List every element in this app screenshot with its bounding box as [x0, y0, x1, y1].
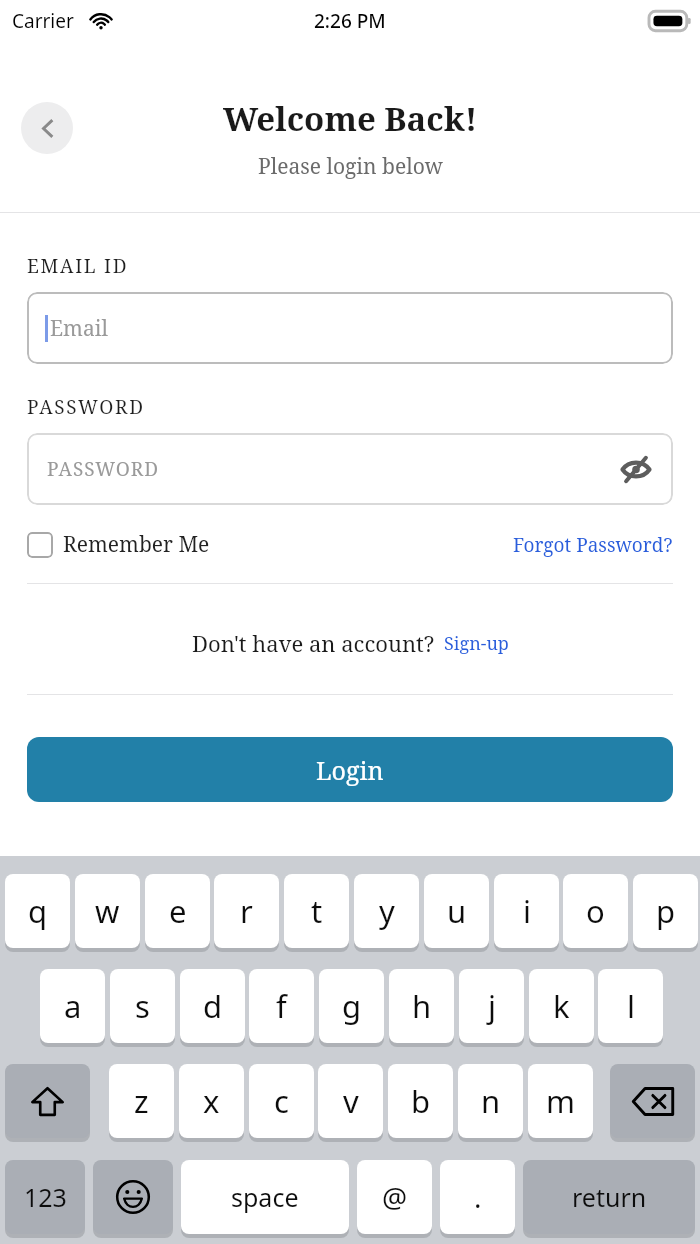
button[interactable]: Back: [21, 102, 73, 154]
staticText: space: [231, 1180, 299, 1214]
staticText: x: [203, 1080, 220, 1122]
button[interactable]: Backspace: [610, 1064, 695, 1138]
button[interactable]: Shift: [5, 1064, 90, 1138]
staticText: e: [169, 890, 187, 932]
staticText: u: [447, 890, 467, 932]
button[interactable]: m: [528, 1064, 593, 1138]
staticText: n: [481, 1080, 501, 1122]
staticText: PASSWORD: [47, 456, 160, 482]
button[interactable]: j: [459, 969, 524, 1043]
staticText: f: [276, 985, 287, 1027]
button[interactable]: .: [440, 1160, 515, 1234]
button[interactable]: d: [180, 969, 245, 1043]
button[interactable]: a: [40, 969, 105, 1043]
staticText: p: [656, 890, 676, 932]
staticText: PASSWORD: [27, 394, 145, 420]
staticText: k: [553, 985, 570, 1027]
staticText: g: [342, 985, 362, 1027]
button[interactable]: PASSWORD: [27, 433, 673, 505]
button[interactable]: f: [249, 969, 314, 1043]
staticText: d: [203, 985, 223, 1027]
staticText: c: [274, 1080, 289, 1122]
staticText: b: [411, 1080, 431, 1122]
staticText: t: [311, 890, 323, 932]
staticText: Don't have an account?: [192, 628, 435, 658]
button[interactable]: Forgot Password?: [513, 528, 673, 562]
staticText: l: [627, 985, 635, 1027]
button[interactable]: x: [179, 1064, 244, 1138]
staticText: a: [64, 985, 82, 1027]
staticText: return: [572, 1180, 647, 1214]
button[interactable]: v: [318, 1064, 383, 1138]
staticText: h: [412, 985, 432, 1027]
button[interactable]: Numbers: [5, 1160, 85, 1234]
button[interactable]: Login: [27, 737, 673, 802]
button[interactable]: Show password: [616, 449, 656, 489]
staticText: i: [523, 890, 531, 932]
button[interactable]: e: [145, 874, 210, 948]
staticText: .: [474, 1178, 482, 1216]
staticText: z: [134, 1080, 149, 1122]
staticText: y: [379, 890, 395, 932]
staticText: o: [586, 890, 605, 932]
button[interactable]: Return: [523, 1160, 695, 1234]
staticText: v: [343, 1080, 359, 1122]
staticText: Email: [50, 314, 108, 343]
staticText: r: [240, 890, 253, 932]
button[interactable]: n: [458, 1064, 523, 1138]
button[interactable]: y: [354, 874, 419, 948]
button[interactable]: l: [598, 969, 663, 1043]
staticText: Carrier: [12, 8, 74, 34]
staticText: Login: [316, 753, 384, 787]
button[interactable]: g: [319, 969, 384, 1043]
staticText: Welcome Back!: [223, 96, 478, 141]
staticText: EMAIL ID: [27, 253, 129, 279]
button[interactable]: i: [494, 874, 559, 948]
staticText: s: [135, 985, 150, 1027]
button[interactable]: @: [357, 1160, 432, 1234]
button[interactable]: z: [109, 1064, 174, 1138]
button[interactable]: u: [424, 874, 489, 948]
staticText: Sign-up: [444, 631, 509, 656]
staticText: j: [488, 985, 496, 1027]
button[interactable]: s: [110, 969, 175, 1043]
staticText: Remember Me: [63, 530, 210, 559]
staticText: 123: [24, 1180, 67, 1214]
staticText: m: [546, 1080, 575, 1122]
staticText: Forgot Password?: [513, 532, 673, 558]
button[interactable]: w: [75, 874, 140, 948]
button[interactable]: Email: [27, 292, 673, 364]
button[interactable]: Emoji: [93, 1160, 173, 1234]
button[interactable]: Remember Me: [27, 526, 210, 563]
button[interactable]: c: [249, 1064, 314, 1138]
button[interactable]: b: [388, 1064, 453, 1138]
button[interactable]: o: [563, 874, 628, 948]
staticText: 2:26 PM: [314, 8, 386, 34]
staticText: q: [28, 890, 48, 932]
button[interactable]: r: [214, 874, 279, 948]
staticText: @: [382, 1178, 408, 1216]
staticText: w: [95, 890, 120, 932]
button[interactable]: space: [181, 1160, 349, 1234]
button[interactable]: p: [633, 874, 698, 948]
button[interactable]: k: [529, 969, 594, 1043]
button[interactable]: Sign-up: [444, 633, 509, 658]
staticText: Please login below: [258, 152, 443, 181]
button[interactable]: q: [5, 874, 70, 948]
button[interactable]: t: [284, 874, 349, 948]
button[interactable]: h: [389, 969, 454, 1043]
